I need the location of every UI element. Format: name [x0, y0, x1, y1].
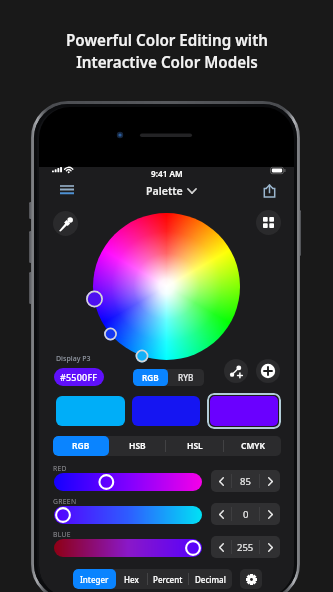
button[interactable]: Decrease BLUE — [211, 536, 231, 558]
staticText: RED — [53, 464, 67, 473]
staticText: RGB — [72, 440, 90, 452]
button[interactable]: RGB — [53, 436, 109, 456]
button[interactable]: Increase GREEN — [260, 503, 280, 525]
staticText: Decimal — [195, 574, 226, 585]
button[interactable]: Color harmony — [224, 359, 248, 383]
staticText: RYB — [178, 372, 194, 383]
button[interactable] — [54, 506, 202, 524]
button[interactable]: Decimal — [189, 569, 232, 589]
button[interactable]: RYB — [168, 369, 204, 386]
staticText: CMYK — [241, 440, 265, 452]
button[interactable]: Eyedropper — [53, 211, 78, 236]
staticText: #5500FF — [60, 371, 98, 383]
button[interactable]: Menu — [55, 177, 79, 201]
button[interactable]: Integer — [73, 569, 116, 589]
button[interactable]: Share — [257, 179, 281, 203]
staticText: Palette — [146, 184, 183, 198]
button[interactable]: Increase RED — [260, 470, 280, 492]
button[interactable]: Grid view — [256, 210, 281, 235]
button[interactable]: Decrease GREEN — [211, 503, 231, 525]
button[interactable] — [210, 396, 278, 426]
staticText: Percent — [153, 574, 183, 585]
staticText: GREEN — [53, 497, 77, 506]
staticText: RGB — [142, 372, 159, 383]
staticText: HSB — [129, 440, 146, 452]
button[interactable]: Decrease RED — [211, 470, 231, 492]
button[interactable]: Hex — [116, 569, 147, 589]
button[interactable]: CMYK — [224, 436, 281, 456]
button[interactable]: HSL — [166, 436, 223, 456]
staticText: Interactive Color Models — [76, 52, 258, 73]
staticText: Powerful Color Editing with — [66, 30, 268, 51]
button[interactable]: Increase BLUE — [260, 536, 280, 558]
staticText: 255 — [237, 541, 254, 554]
button[interactable] — [54, 539, 202, 557]
button[interactable]: #5500FF — [54, 368, 104, 386]
staticText: 85 — [240, 475, 251, 488]
staticText: HSL — [187, 440, 203, 452]
button[interactable]: Add color — [256, 359, 280, 383]
button[interactable]: HSB — [109, 436, 165, 456]
staticText: 9:41 AM — [151, 168, 183, 179]
button[interactable]: Settings — [240, 569, 262, 589]
button[interactable]: RGB — [133, 369, 168, 386]
button[interactable]: Palette — [146, 184, 197, 198]
staticText: Hex — [124, 574, 139, 585]
button[interactable] — [132, 396, 200, 426]
button[interactable] — [56, 396, 125, 426]
staticText: 0 — [243, 508, 249, 521]
staticText: Integer — [80, 574, 109, 585]
button[interactable] — [54, 473, 202, 491]
staticText: Display P3 — [56, 354, 91, 364]
staticText: BLUE — [53, 530, 71, 539]
button[interactable]: Percent — [148, 569, 188, 589]
